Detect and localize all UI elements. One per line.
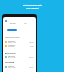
button[interactable]: Groceries [5,40,34,44]
staticText: Yesterday [8,46,15,48]
staticText: -8.00 [30,45,34,47]
staticText: Spending summary [5,36,20,38]
staticText: Due 12 Mar [8,57,16,59]
staticText: -24.50 [29,41,34,43]
button[interactable]: Internet [5,65,34,69]
staticText: Budget [10,22,16,24]
button[interactable]: Transport [5,44,34,48]
staticText: Electricity [8,55,16,57]
staticText: Get organised with [23,4,42,7]
button[interactable]: Electricity [5,55,34,59]
staticText: Upcoming [5,61,15,63]
staticText: your Budget [26,7,39,10]
staticText: Groceries [8,40,16,42]
staticText: Mar [24,22,27,24]
staticText: Internet [8,65,15,67]
staticText: Bills & Fees [5,52,16,55]
staticText: -60.00 [29,56,34,58]
staticText: Transport [8,44,16,46]
staticText: Today, 14:20 [8,42,17,44]
staticText: Due 18 Mar [8,67,16,69]
staticText: -35.00 [29,66,34,68]
button[interactable] [7,29,17,31]
